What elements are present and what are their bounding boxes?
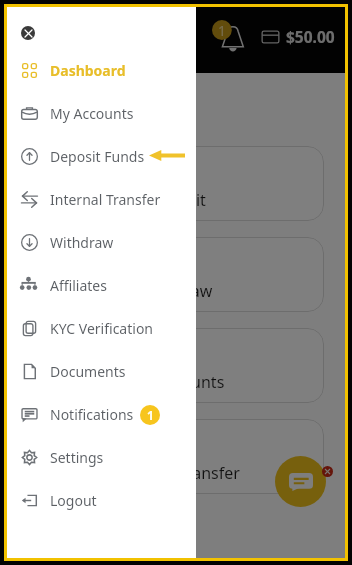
staticText: 1 [218,21,227,40]
staticText: Withdraw [50,233,114,252]
staticText: Logout [50,491,97,510]
staticText: $50.00 [286,26,335,47]
staticText: Notifications [50,405,134,424]
button[interactable]: Notifications [212,18,248,54]
button[interactable]: Close chat [322,466,333,477]
button[interactable]: Internal Transfer [7,178,196,221]
button[interactable]: Internal Transfer [29,419,324,494]
staticText: Internal Transfer [114,462,240,484]
button[interactable]: Withdraw [7,221,196,264]
staticText: Deposit Funds [50,147,145,166]
button[interactable]: Notifications [7,393,196,436]
button[interactable]: My Accounts [7,92,196,135]
staticText: Documents [50,362,126,381]
staticText: My Accounts [129,371,225,393]
staticText: Internal Transfer [50,190,161,209]
staticText: My Accounts [50,104,134,123]
button[interactable]: Withdraw [29,237,324,312]
button[interactable]: Close drawer [21,26,35,40]
button[interactable]: Chat support [275,456,326,507]
button[interactable]: Dashboard [7,49,196,92]
button[interactable]: Affiliates [7,264,196,307]
button[interactable]: KYC Verification [7,307,196,350]
button[interactable]: Deposit Funds [7,135,196,178]
staticText: Deposit [148,189,206,211]
button[interactable]: Deposit [29,146,324,221]
button[interactable]: $50.00 [261,26,335,47]
staticText: Withdraw [140,280,213,302]
staticText: KYC Verification [50,319,153,338]
staticText: Affiliates [50,276,107,295]
staticText: 1 [147,407,154,423]
staticText: Dashboard [50,61,126,80]
button[interactable]: Settings [7,436,196,479]
button[interactable]: Logout [7,479,196,522]
button[interactable]: My Accounts [29,328,324,403]
staticText: Settings [50,448,104,467]
button[interactable]: Documents [7,350,196,393]
